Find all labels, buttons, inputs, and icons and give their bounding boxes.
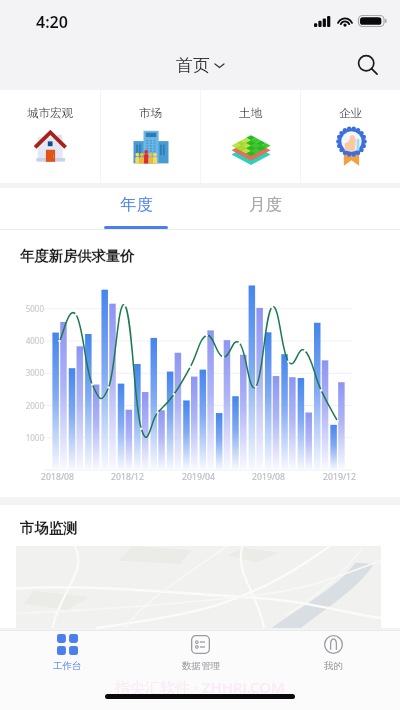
button[interactable]: Search — [352, 49, 384, 81]
button[interactable]: Market monitor map — [16, 546, 381, 628]
staticText: 我的 — [324, 660, 343, 672]
button[interactable]: 城市宏观 — [0, 90, 100, 183]
button[interactable]: 首页 — [176, 55, 224, 76]
staticText: 1000 — [25, 432, 44, 443]
button[interactable]: 数据管理 — [134, 630, 267, 676]
staticText: 企业 — [339, 106, 362, 120]
staticText: 2019/12 — [323, 471, 357, 483]
staticText: 2019/08 — [252, 471, 286, 483]
staticText: 指尖汇软件 · ZHHRJ.COM — [115, 677, 285, 697]
staticText: 2000 — [25, 400, 44, 411]
button[interactable]: 我的 — [267, 630, 400, 676]
staticText: 月度 — [249, 194, 282, 215]
staticText: 2018/08 — [41, 471, 75, 483]
button[interactable]: 市场 — [101, 90, 200, 183]
staticText: 2019/04 — [182, 471, 216, 483]
button[interactable]: 工作台 — [0, 630, 134, 676]
staticText: 4:20 — [36, 11, 68, 33]
staticText: 3000 — [25, 367, 44, 378]
button[interactable]: 年度 — [104, 188, 168, 229]
button[interactable]: 月度 — [233, 188, 297, 229]
staticText: 数据管理 — [182, 660, 220, 672]
staticText: 5000 — [25, 303, 44, 314]
staticText: 年度新房供求量价 — [20, 247, 135, 265]
staticText: 2018/12 — [111, 471, 145, 483]
staticText: 首页 — [176, 55, 210, 76]
staticText: 年度 — [120, 194, 153, 215]
staticText: 土地 — [239, 106, 262, 120]
staticText: 市场监测 — [20, 519, 78, 537]
staticText: 城市宏观 — [27, 106, 73, 120]
staticText: 工作台 — [53, 660, 82, 672]
button[interactable]: 企业 — [301, 90, 400, 183]
staticText: 市场 — [139, 106, 162, 120]
staticText: 4000 — [25, 335, 44, 346]
button[interactable]: 土地 — [201, 90, 300, 183]
